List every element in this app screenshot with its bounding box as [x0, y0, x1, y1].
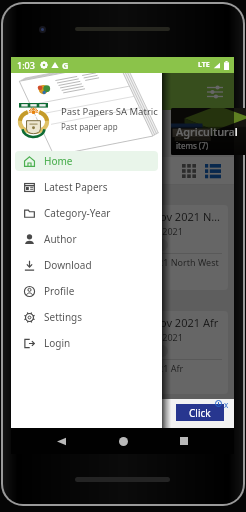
staticText: LTE	[198, 60, 210, 70]
button[interactable]: Settings	[15, 307, 158, 327]
button[interactable]: Grid view	[177, 159, 201, 183]
staticText: Author: Dept of Basic Education 2021	[26, 225, 183, 237]
staticText: Profile	[44, 284, 75, 298]
staticText: Agricultural Sciences P1 Nov 2021 Afr	[26, 362, 184, 374]
button[interactable]: Filter	[202, 79, 228, 105]
button[interactable]: Category-Year	[15, 203, 158, 223]
staticText: 1:03	[17, 59, 35, 71]
button[interactable]: Open navigation drawer	[17, 79, 43, 105]
staticText: Download	[44, 258, 92, 272]
button[interactable]: Login	[15, 333, 158, 353]
staticText: Past Papers SA Matric	[61, 105, 158, 118]
staticText: Agricultural Sciences P1 Nov 2021 North …	[26, 209, 222, 224]
button[interactable]: Home	[15, 151, 158, 171]
button[interactable]: Click	[176, 404, 224, 421]
staticText: Past paper app	[61, 121, 118, 132]
staticText: Home	[44, 154, 73, 168]
staticText: Agricultural Sciences P1 Nov 2021 North …	[26, 256, 219, 268]
staticText: Settings	[44, 310, 83, 324]
button[interactable]: Author	[15, 229, 158, 249]
staticText: G	[62, 59, 69, 71]
staticText: Agricultural Ma	[176, 124, 246, 139]
staticText: Login	[44, 336, 71, 350]
staticText: x	[224, 399, 229, 410]
button[interactable]: Back	[49, 429, 73, 453]
staticText: Past Papers	[51, 82, 134, 102]
button[interactable]: Agricultural Sciences P1 Nov 2021 Afr	[17, 311, 228, 394]
button[interactable]: Latest Papers	[15, 177, 158, 197]
staticText: items (7)	[176, 140, 209, 151]
button[interactable]: Agricultural Sciences P1 Nov 2021 North …	[17, 205, 228, 290]
staticText: Author: Dept of Basic Education 2021	[26, 331, 183, 343]
staticText: Category-Year	[44, 206, 111, 220]
button[interactable]: Agricultural Ma	[171, 108, 246, 155]
staticText: Agricultural Sciences P1 Nov 2021 Afr	[26, 315, 219, 330]
staticText: Click	[189, 406, 211, 420]
button[interactable]: Profile	[15, 281, 158, 301]
button[interactable]: Home	[111, 429, 135, 453]
staticText: Latest Papers	[44, 180, 108, 194]
staticText: Author	[44, 232, 77, 246]
button[interactable]: Download	[15, 255, 158, 275]
button[interactable]: List view	[201, 159, 225, 183]
button[interactable]: Recent apps	[172, 429, 196, 453]
